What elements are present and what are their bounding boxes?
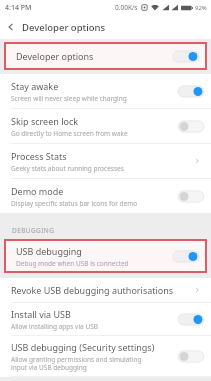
- staticText: USB debugging: [16, 245, 82, 257]
- staticText: Developer options: [16, 50, 94, 62]
- staticText: Stay awake: [11, 80, 59, 92]
- button[interactable]: Toggle off: [178, 350, 204, 363]
- staticText: Geeky stats about running processes: [11, 164, 124, 173]
- button[interactable]: Toggle on: [178, 313, 204, 326]
- button[interactable]: Toggle off: [178, 120, 204, 133]
- staticText: Allow installing apps via USB: [11, 322, 98, 331]
- staticText: Skip screen lock: [11, 115, 79, 127]
- staticText: 4:14 PM: [5, 3, 32, 13]
- staticText: USB debugging (Security settings): [11, 341, 155, 353]
- staticText: Allow granting permissions and simulatin…: [11, 355, 142, 372]
- button[interactable]: Back: [0, 15, 22, 39]
- button[interactable]: Skip screen lock: [0, 109, 211, 143]
- button[interactable]: Toggle off: [178, 190, 204, 203]
- staticText: Screen will never sleep while charging: [11, 94, 127, 103]
- staticText: Demo mode: [11, 185, 64, 197]
- button[interactable]: Toggle on: [178, 85, 204, 98]
- staticText: 92%: [195, 4, 207, 12]
- staticText: Developer options: [22, 21, 106, 34]
- staticText: DEBUGGING: [12, 226, 55, 235]
- button[interactable]: Stay awake: [0, 74, 211, 108]
- staticText: Process Stats: [11, 150, 67, 162]
- staticText: 0.00K/s: [115, 3, 138, 12]
- staticText: Debug mode when USB is connected: [16, 259, 129, 268]
- button[interactable]: USB debugging (Security settings): [0, 336, 211, 376]
- staticText: Go directly to Home screen from wake: [11, 129, 128, 138]
- button[interactable]: Developer options: [5, 43, 206, 69]
- button[interactable]: Toggle on: [173, 50, 199, 63]
- button[interactable]: Toggle on: [173, 250, 199, 263]
- staticText: Display specific status bar icons for de…: [11, 199, 138, 208]
- button[interactable]: Install via USB: [0, 303, 211, 335]
- staticText: Install via USB: [11, 308, 71, 320]
- staticText: Revoke USB debugging authorisations: [11, 284, 174, 296]
- button[interactable]: Revoke USB debugging authorisations: [0, 278, 211, 302]
- button[interactable]: USB debugging: [5, 240, 206, 272]
- button[interactable]: Process Stats: [0, 144, 211, 178]
- button[interactable]: Demo mode: [0, 179, 211, 213]
